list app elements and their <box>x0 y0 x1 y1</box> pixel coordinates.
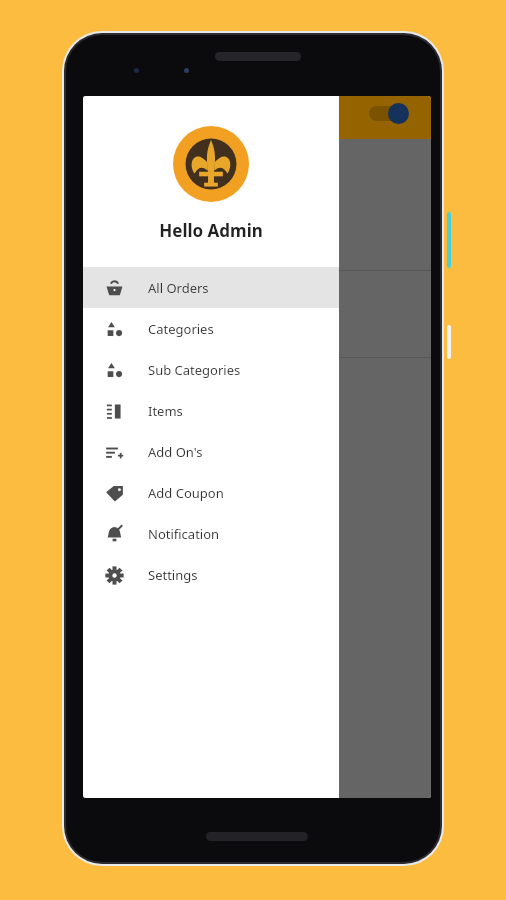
button[interactable]: Notification <box>83 513 339 554</box>
button[interactable]: Settings <box>83 554 339 595</box>
staticText: Notification <box>148 525 220 543</box>
staticText: All Orders <box>148 279 209 297</box>
button[interactable]: Add On's <box>83 431 339 472</box>
staticText: Hello Admin <box>83 219 339 242</box>
button[interactable]: Add Coupon <box>83 472 339 513</box>
button[interactable]: Ready <box>83 291 431 331</box>
button[interactable]: Items <box>83 390 339 431</box>
button[interactable]: Ready <box>83 205 431 245</box>
button[interactable]: Online toggle <box>369 106 403 121</box>
staticText: Add Coupon <box>148 484 224 502</box>
button[interactable]: Categories <box>83 308 339 349</box>
button[interactable]: All Orders <box>83 267 339 308</box>
staticText: Categories <box>148 320 214 338</box>
staticText: Ready <box>107 304 143 320</box>
staticText: Settings <box>148 566 198 584</box>
staticText: Items <box>148 402 183 420</box>
staticText: Add On's <box>148 443 203 461</box>
staticText: READY <box>83 156 431 172</box>
button[interactable]: Sub Categories <box>83 349 339 390</box>
staticText: Sub Categories <box>148 361 241 379</box>
